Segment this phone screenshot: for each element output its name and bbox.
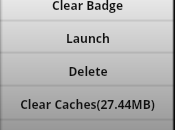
staticText: Clear Caches(27.44MB)	[20, 96, 155, 112]
staticText: Delete	[68, 63, 108, 79]
button[interactable]: Delete	[0, 53, 175, 86]
staticText: Launch	[66, 30, 110, 46]
button[interactable]: Clear Badge	[0, 0, 175, 21]
staticText: Clear Badge	[52, 0, 123, 13]
button[interactable]: Clear Caches(27.44MB)	[0, 86, 175, 120]
button[interactable]: Launch	[0, 21, 175, 53]
